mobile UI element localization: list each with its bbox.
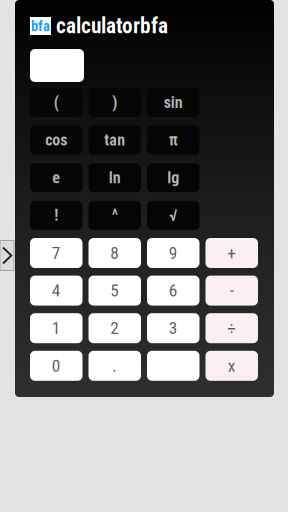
staticText: ) xyxy=(112,93,117,112)
staticText: tan xyxy=(104,131,125,149)
staticText: - xyxy=(230,280,234,301)
button[interactable]: 4 xyxy=(30,276,82,306)
staticText: + xyxy=(227,243,236,263)
staticText: x xyxy=(228,356,236,376)
staticText: lg xyxy=(167,168,179,187)
button[interactable]: 2 xyxy=(88,313,141,343)
staticText: 3 xyxy=(169,318,178,338)
button[interactable]: sin xyxy=(147,88,199,117)
staticText: 5 xyxy=(110,280,119,301)
button[interactable] xyxy=(147,351,199,381)
staticText: 7 xyxy=(52,243,61,263)
staticText: cos xyxy=(45,131,67,149)
button[interactable]: 7 xyxy=(30,238,82,268)
staticText: . xyxy=(112,356,117,376)
staticText: √ xyxy=(169,206,177,225)
button[interactable]: 5 xyxy=(88,276,141,306)
button[interactable]: π xyxy=(147,126,199,155)
button[interactable]: Open panel xyxy=(0,240,14,270)
button[interactable]: √ xyxy=(147,201,199,230)
button[interactable]: ) xyxy=(88,88,141,117)
staticText: 1 xyxy=(52,318,61,338)
button[interactable]: x xyxy=(205,351,258,381)
staticText: ^ xyxy=(112,206,118,225)
staticText: 4 xyxy=(52,280,61,301)
staticText: 8 xyxy=(110,243,119,263)
staticText: sin xyxy=(164,93,183,112)
staticText: 2 xyxy=(110,318,119,338)
staticText: ! xyxy=(54,206,58,225)
button[interactable]: cos xyxy=(30,126,82,155)
button[interactable]: tan xyxy=(88,126,141,155)
button[interactable]: - xyxy=(205,276,258,306)
staticText: ( xyxy=(54,93,59,112)
button[interactable]: 6 xyxy=(147,276,199,306)
staticText: ln xyxy=(109,168,121,187)
button[interactable]: e xyxy=(30,163,82,192)
button[interactable]: lg xyxy=(147,163,199,192)
button[interactable]: ÷ xyxy=(205,313,258,343)
staticText: e xyxy=(52,168,60,187)
button[interactable]: ^ xyxy=(88,201,141,230)
button[interactable]: 1 xyxy=(30,313,82,343)
staticText: calculatorbfa xyxy=(56,13,168,38)
button[interactable]: . xyxy=(88,351,141,381)
staticText: bfa xyxy=(31,17,50,35)
button[interactable]: 0 xyxy=(30,351,82,381)
staticText: 9 xyxy=(169,243,178,263)
staticText: π xyxy=(169,131,178,149)
button[interactable]: 8 xyxy=(88,238,141,268)
button[interactable]: ! xyxy=(30,201,82,230)
button[interactable]: ln xyxy=(88,163,141,192)
staticText: ÷ xyxy=(227,318,236,338)
staticText: 0 xyxy=(52,356,61,376)
button[interactable]: 3 xyxy=(147,313,199,343)
button[interactable]: 9 xyxy=(147,238,199,268)
button[interactable]: ( xyxy=(30,88,82,117)
staticText: 6 xyxy=(169,280,178,301)
button[interactable]: + xyxy=(205,238,258,268)
